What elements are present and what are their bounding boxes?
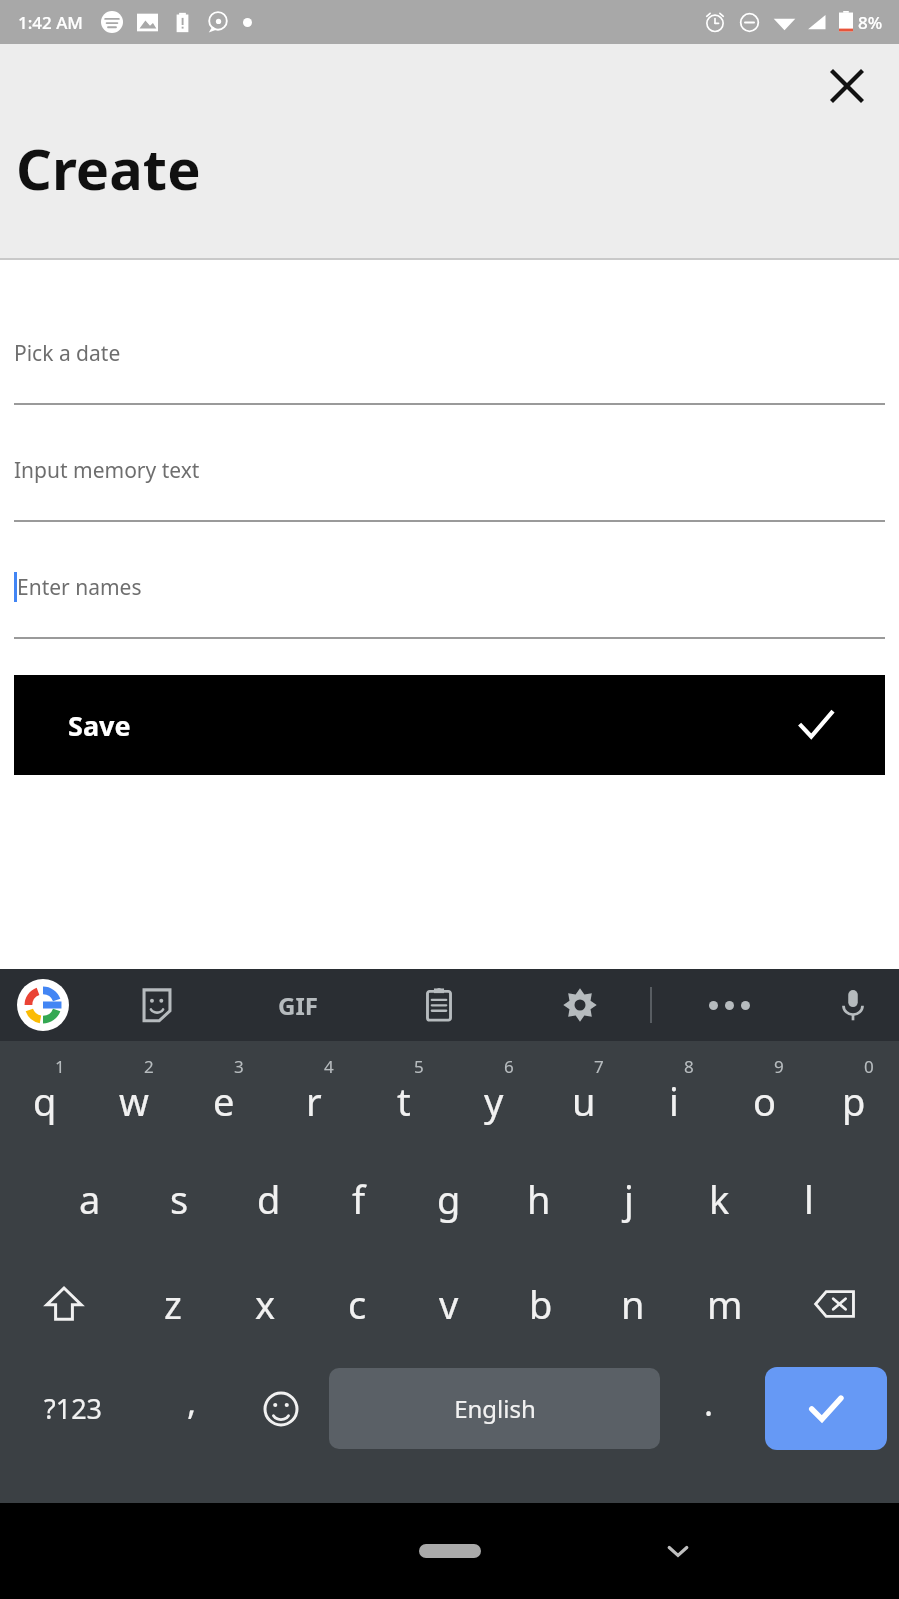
staticText: Input memory text (14, 456, 200, 485)
staticText: 9 (774, 1055, 784, 1078)
staticText: GIF (278, 989, 318, 1022)
button[interactable]: Shift (0, 1251, 127, 1356)
button[interactable]: Enter (765, 1367, 887, 1450)
staticText: 4 (324, 1055, 334, 1078)
button[interactable]: Save (14, 675, 885, 775)
button[interactable]: l (764, 1146, 854, 1251)
button[interactable]: English (329, 1368, 660, 1449)
button[interactable]: 1 (0, 1041, 89, 1146)
staticText: 5 (414, 1055, 424, 1078)
staticText: r (306, 1075, 322, 1127)
staticText: h (527, 1173, 551, 1225)
staticText: b (529, 1278, 553, 1330)
staticText: c (348, 1278, 367, 1330)
staticText: Save (68, 707, 131, 744)
staticText: English (454, 1392, 536, 1425)
staticText: x (255, 1278, 276, 1330)
staticText: 8% (858, 11, 883, 34)
staticText: 1:42 AM (18, 11, 83, 34)
staticText: Create (16, 130, 201, 206)
staticText: . (704, 1380, 714, 1426)
button[interactable]: Settings (509, 969, 650, 1041)
button[interactable]: Voice input (807, 969, 899, 1041)
staticText: k (709, 1173, 730, 1225)
button[interactable]: ?123 (0, 1356, 147, 1461)
button[interactable]: x (219, 1251, 311, 1356)
button[interactable]: h (494, 1146, 584, 1251)
button[interactable]: Pick a date (14, 330, 885, 405)
button[interactable]: c (311, 1251, 403, 1356)
button[interactable]: 2 (89, 1041, 179, 1146)
button[interactable]: GIF (227, 969, 368, 1041)
button[interactable]: Google (0, 969, 86, 1041)
staticText: 2 (144, 1055, 154, 1078)
staticText: e (213, 1075, 235, 1127)
button[interactable]: m (679, 1251, 771, 1356)
staticText: l (804, 1173, 814, 1225)
button[interactable]: f (314, 1146, 404, 1251)
staticText: w (119, 1075, 149, 1127)
staticText: j (624, 1173, 634, 1225)
button[interactable]: 6 (449, 1041, 539, 1146)
staticText: q (33, 1075, 57, 1127)
button[interactable]: 5 (359, 1041, 449, 1146)
staticText: p (842, 1075, 866, 1127)
staticText: o (753, 1075, 776, 1127)
button[interactable]: 7 (539, 1041, 629, 1146)
staticText: d (257, 1173, 281, 1225)
button[interactable]: v (403, 1251, 495, 1356)
button[interactable]: j (584, 1146, 674, 1251)
staticText: v (439, 1278, 459, 1330)
button[interactable]: Emoji (236, 1356, 325, 1461)
staticText: Pick a date (14, 339, 121, 368)
button[interactable]: s (134, 1146, 224, 1251)
button[interactable]: 4 (269, 1041, 359, 1146)
button[interactable]: k (674, 1146, 764, 1251)
button[interactable]: More options (652, 969, 807, 1041)
button[interactable]: 9 (719, 1041, 809, 1146)
button[interactable]: Backspace (771, 1251, 899, 1356)
staticText: 7 (594, 1055, 604, 1078)
button[interactable]: Clipboard (368, 969, 509, 1041)
button[interactable]: 8 (629, 1041, 719, 1146)
button[interactable]: g (404, 1146, 494, 1251)
staticText: y (484, 1075, 504, 1127)
button[interactable]: Enter names (14, 564, 885, 639)
button[interactable]: Home (419, 1544, 481, 1558)
button[interactable]: d (224, 1146, 314, 1251)
staticText: n (621, 1278, 645, 1330)
button[interactable]: Hide keyboard (651, 1524, 705, 1578)
staticText: , (187, 1379, 197, 1425)
button[interactable]: z (127, 1251, 219, 1356)
staticText: m (707, 1278, 743, 1330)
button[interactable]: b (495, 1251, 587, 1356)
staticText: z (164, 1278, 182, 1330)
button[interactable]: 3 (179, 1041, 269, 1146)
staticText: Enter names (17, 573, 142, 602)
button[interactable]: a (45, 1146, 134, 1251)
button[interactable]: , (147, 1356, 236, 1461)
staticText: i (669, 1075, 679, 1127)
staticText: s (170, 1173, 189, 1225)
button[interactable]: n (587, 1251, 679, 1356)
staticText: 3 (234, 1055, 244, 1078)
staticText: f (352, 1173, 366, 1225)
staticText: ?123 (44, 1390, 103, 1427)
button[interactable]: Input memory text (14, 447, 885, 522)
staticText: 0 (864, 1055, 874, 1078)
button[interactable]: . (664, 1356, 753, 1461)
staticText: 1 (55, 1055, 65, 1078)
staticText: u (572, 1075, 596, 1127)
staticText: t (397, 1075, 411, 1127)
staticText: 8 (684, 1055, 694, 1078)
staticText: a (79, 1173, 101, 1225)
staticText: 6 (504, 1055, 514, 1078)
button[interactable]: Stickers (86, 969, 227, 1041)
button[interactable]: Close (819, 58, 875, 114)
button[interactable]: 0 (809, 1041, 899, 1146)
staticText: g (437, 1173, 461, 1225)
